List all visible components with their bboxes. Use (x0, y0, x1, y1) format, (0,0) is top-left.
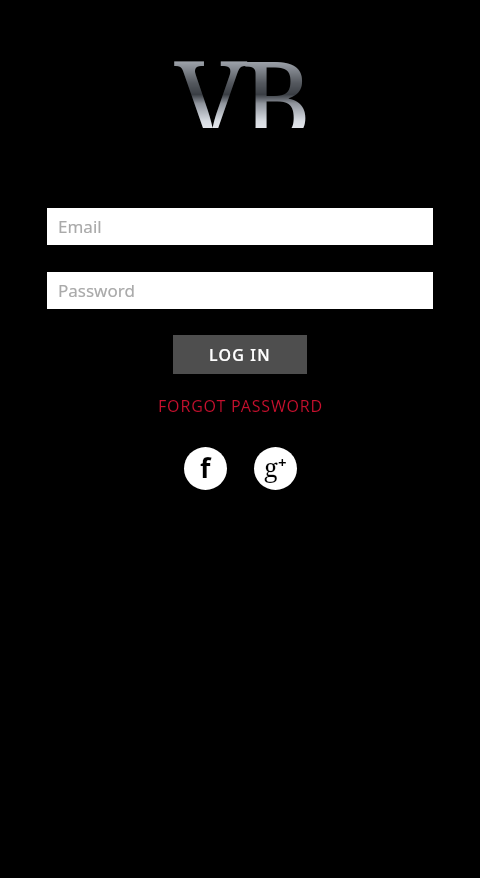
staticText: Password (58, 279, 135, 302)
staticText: + (278, 452, 287, 472)
staticText: Email (58, 215, 102, 238)
button[interactable]: Sign in with Facebook (184, 447, 227, 490)
button[interactable]: Email (47, 208, 433, 245)
staticText: FORGOT PASSWORD (158, 395, 323, 417)
button[interactable]: LOG IN (173, 335, 307, 374)
button[interactable]: Sign in with Google Plus (254, 447, 297, 490)
staticText: LOG IN (209, 344, 271, 366)
button[interactable]: Password (47, 272, 433, 309)
staticText: f (200, 449, 211, 486)
staticText: g (264, 449, 278, 484)
button[interactable]: FORGOT PASSWORD (150, 393, 331, 419)
staticText: VB (174, 24, 306, 128)
